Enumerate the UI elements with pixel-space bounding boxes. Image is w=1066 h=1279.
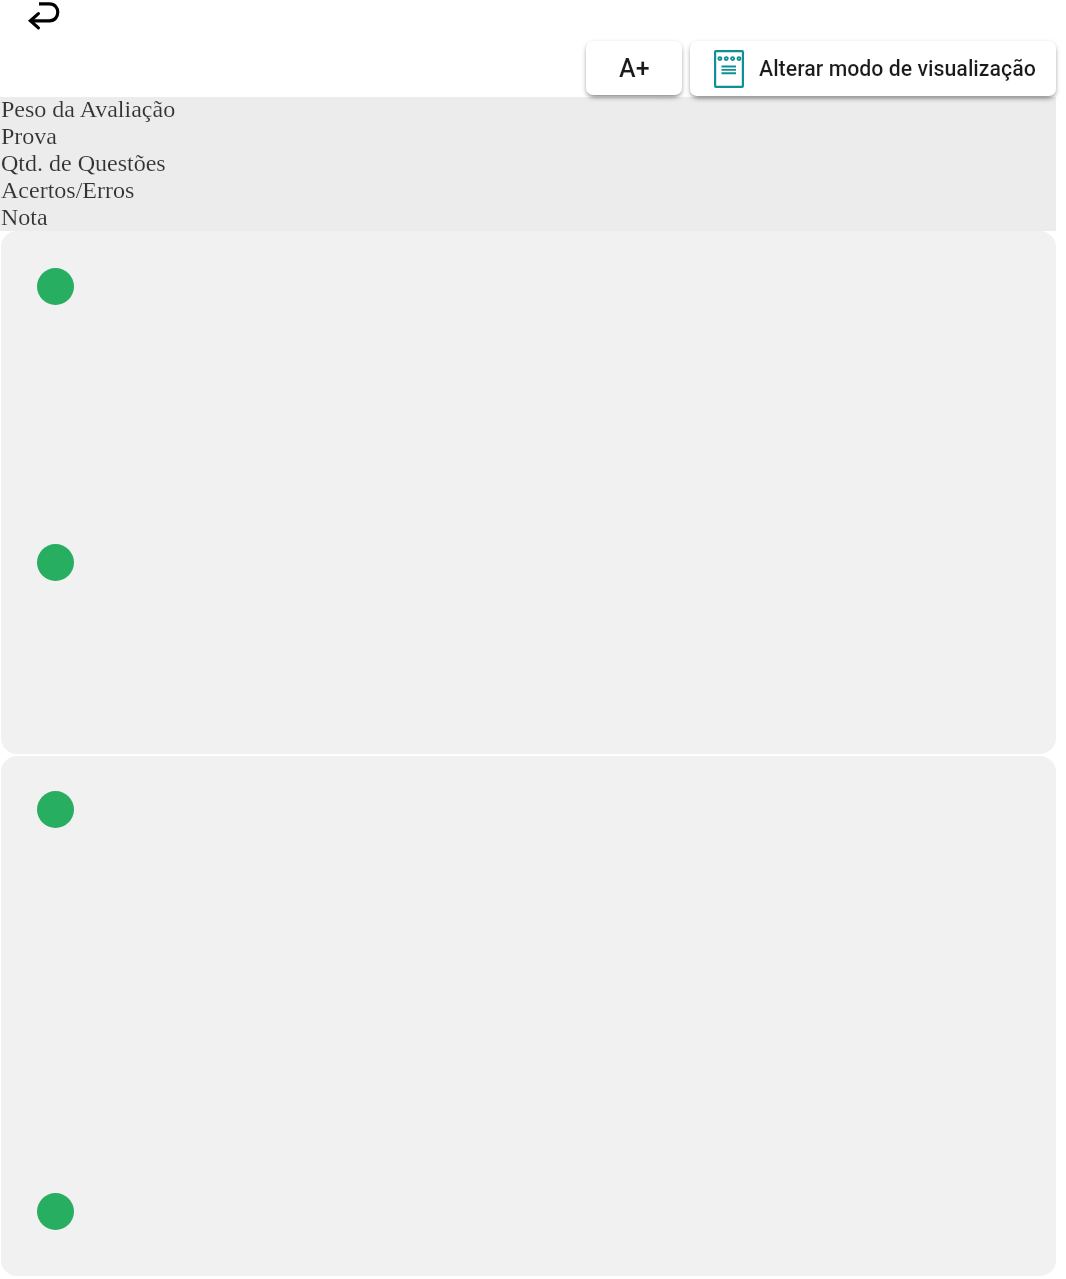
staticText: Prova [1,122,57,149]
staticText: A+ [619,54,650,83]
button[interactable]: Alterar modo de visualização [690,41,1056,96]
button[interactable] [1,756,1056,1276]
staticText: Acertos/Erros [1,176,135,203]
button[interactable] [1,231,1056,754]
staticText: Nota [1,203,48,229]
button[interactable]: Voltar [17,0,79,37]
staticText: Peso da Avaliação [1,95,176,122]
button[interactable]: A+ [586,41,682,95]
staticText: Alterar modo de visualização [759,56,1036,81]
staticText: Qtd. de Questões [1,149,166,176]
